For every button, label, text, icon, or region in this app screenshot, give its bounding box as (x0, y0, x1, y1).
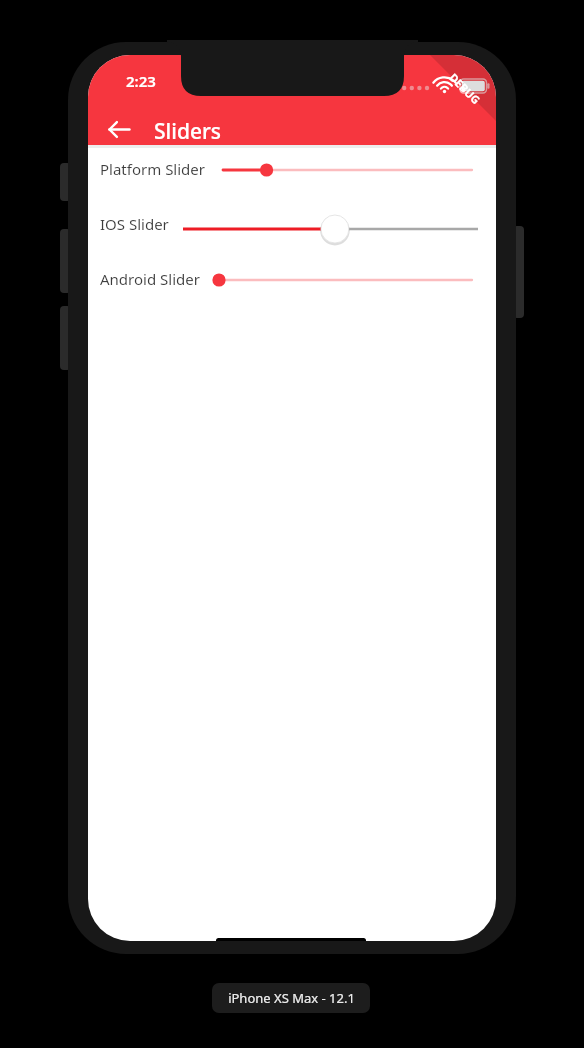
button[interactable]: Back (96, 109, 142, 149)
staticText: Platform Slider (100, 159, 205, 179)
staticText: Sliders (154, 117, 222, 146)
staticText: Android Slider (100, 269, 200, 289)
staticText: iPhone XS Max - 12.1 (228, 989, 355, 1007)
staticText: 2:23 (126, 71, 156, 91)
button[interactable]: iPhone XS Max - 12.1 (212, 983, 370, 1013)
staticText: IOS Slider (100, 214, 169, 234)
staticText: DEBUG (446, 70, 484, 107)
